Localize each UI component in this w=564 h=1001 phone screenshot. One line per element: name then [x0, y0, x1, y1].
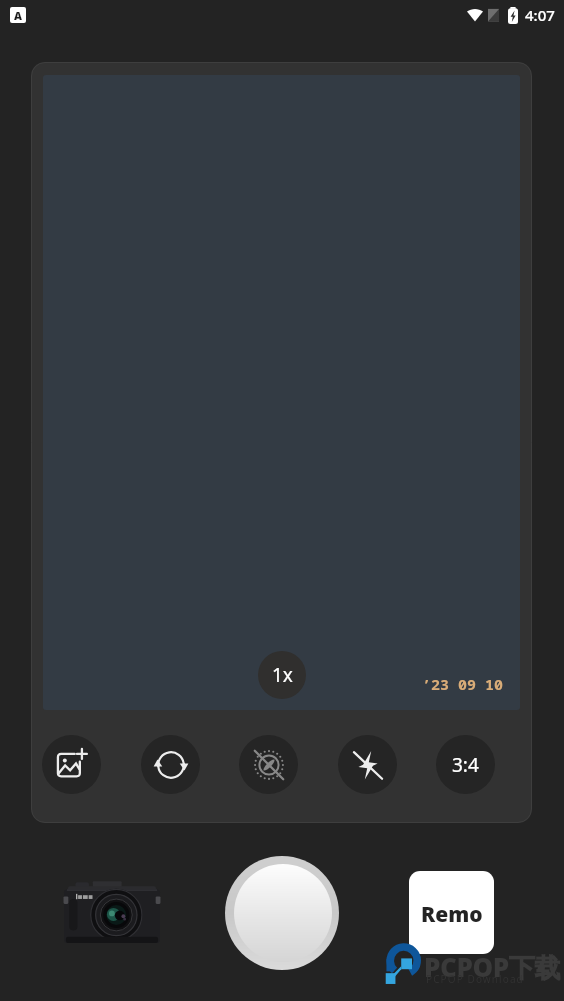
button[interactable]: Shutter: [225, 856, 339, 970]
button[interactable]: Last photo: [64, 880, 160, 943]
staticText: 4:07: [525, 5, 555, 25]
staticText: ’23 09 10: [422, 674, 504, 694]
button[interactable]: Switch camera: [141, 735, 200, 794]
staticText: PCPOP Download: [426, 972, 524, 986]
button[interactable]: 3:4: [436, 735, 495, 794]
button[interactable]: Add photo: [42, 735, 101, 794]
staticText: 1x: [272, 662, 293, 688]
button[interactable]: Remo: [409, 871, 494, 954]
button[interactable]: 1x: [258, 651, 306, 699]
staticText: A: [14, 8, 22, 23]
staticText: 3:4: [452, 752, 479, 778]
staticText: PCPOP下载: [424, 949, 561, 985]
button[interactable]: Motion photo off: [239, 735, 298, 794]
button[interactable]: Flash off: [338, 735, 397, 794]
staticText: Remo: [421, 900, 483, 929]
